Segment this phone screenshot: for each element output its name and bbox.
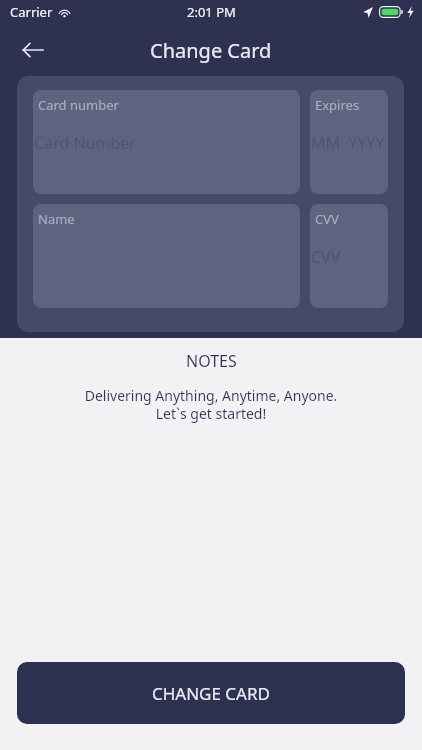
button[interactable]: Back (12, 29, 54, 71)
staticText: NOTES (186, 350, 237, 372)
staticText: MM YYYY (311, 132, 385, 154)
staticText: CVV (311, 246, 341, 268)
staticText: Name (38, 210, 75, 228)
staticText: CVV (315, 210, 339, 228)
staticText: Change Card (150, 37, 272, 64)
button[interactable]: Card number (33, 90, 300, 194)
staticText: Delivering Anything, Anytime, Anyone. Le… (0, 386, 422, 423)
staticText: Card Number (34, 132, 136, 154)
button[interactable]: Name (33, 204, 300, 308)
staticText: 2:01 PM (187, 3, 236, 21)
staticText: CHANGE CARD (152, 682, 270, 705)
staticText: Expires (315, 96, 360, 114)
button[interactable]: CVV (310, 204, 388, 308)
staticText: Card number (38, 96, 119, 114)
staticText: Carrier (10, 3, 53, 21)
button[interactable]: Expires (310, 90, 388, 194)
button[interactable]: CHANGE CARD (17, 662, 405, 724)
